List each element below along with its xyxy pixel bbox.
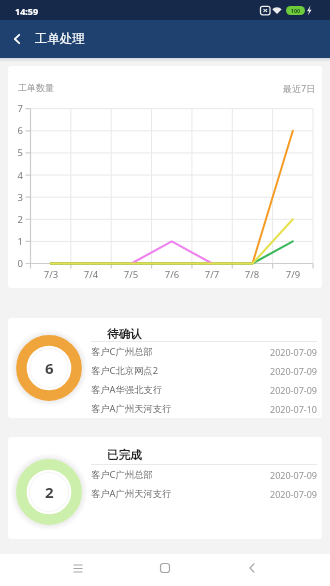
- button[interactable]: 客户A广州天河支行: [91, 484, 317, 503]
- staticText: 客户C广州总部: [91, 345, 153, 358]
- staticText: 7/3: [40, 268, 62, 281]
- button[interactable]: 客户A华强北支行: [91, 380, 317, 399]
- staticText: 客户C广州总部: [91, 468, 153, 481]
- button[interactable]: 2: [17, 460, 81, 524]
- staticText: 6: [9, 124, 23, 137]
- staticText: 7: [9, 102, 23, 115]
- staticText: 7/8: [241, 268, 263, 281]
- staticText: 5: [9, 146, 23, 159]
- staticText: 1: [9, 235, 23, 248]
- button[interactable]: 客户A广州天河支行: [91, 399, 317, 418]
- staticText: 2020-07-09: [270, 469, 317, 481]
- staticText: 7/4: [80, 268, 102, 281]
- staticText: 2: [45, 482, 54, 502]
- button[interactable]: 客户C广州总部: [91, 342, 317, 361]
- staticText: 6: [45, 358, 54, 378]
- staticText: 最近7日: [283, 82, 316, 94]
- staticText: 2020-07-09: [270, 346, 317, 358]
- staticText: 客户A广州天河支行: [91, 402, 172, 415]
- staticText: 7/6: [161, 268, 183, 281]
- staticText: 客户C北京网点2: [91, 364, 158, 377]
- button[interactable]: 客户C广州总部: [91, 465, 317, 484]
- button[interactable]: [0, 20, 34, 58]
- staticText: 客户A华强北支行: [91, 383, 163, 396]
- button[interactable]: [222, 554, 282, 586]
- staticText: 工单处理: [35, 31, 85, 47]
- staticText: 4: [9, 169, 23, 182]
- staticText: 2020-07-10: [270, 403, 317, 415]
- staticText: 2020-07-09: [270, 365, 317, 377]
- button[interactable]: [48, 554, 108, 586]
- staticText: 14:59: [15, 5, 39, 17]
- staticText: 工单数量: [18, 82, 54, 93]
- staticText: 已完成: [107, 448, 142, 462]
- staticText: 2: [9, 213, 23, 226]
- button[interactable]: 6: [17, 336, 81, 400]
- staticText: 待确认: [107, 327, 142, 341]
- staticText: 2020-07-09: [270, 488, 317, 500]
- button[interactable]: 客户C北京网点2: [91, 361, 317, 380]
- button[interactable]: [135, 554, 195, 586]
- staticText: 7/7: [201, 268, 223, 281]
- staticText: 7/9: [282, 268, 304, 281]
- staticText: 100: [286, 7, 305, 14]
- staticText: 3: [9, 191, 23, 204]
- staticText: 0: [9, 257, 23, 270]
- staticText: 客户A广州天河支行: [91, 487, 172, 500]
- staticText: 7/5: [120, 268, 142, 281]
- staticText: 2020-07-09: [270, 384, 317, 396]
